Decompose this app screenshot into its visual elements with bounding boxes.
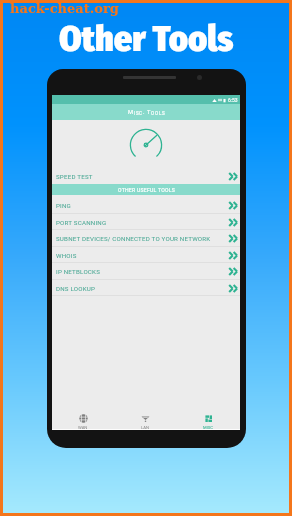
other: Speed gauge <box>129 128 163 162</box>
staticText: WHOIS <box>56 252 77 259</box>
staticText: . <box>143 109 145 116</box>
staticText: S <box>136 111 139 116</box>
staticText: PORT SCANNING <box>56 219 107 226</box>
staticText: M <box>128 109 134 116</box>
staticText: T <box>147 109 151 116</box>
staticText: SUBNET DEVICES/ CONNECTED TO YOUR NETWOR… <box>56 235 211 242</box>
staticText: C <box>139 111 143 116</box>
staticText: OTHER USEFUL TOOLS <box>118 187 175 193</box>
button[interactable]: PING <box>52 197 240 214</box>
other: MISC <box>204 414 213 423</box>
staticText: L <box>159 111 162 116</box>
staticText: SPEED TEST <box>56 173 93 180</box>
staticText: IP NETBLOCKS <box>56 268 101 275</box>
button[interactable]: MISC <box>177 395 240 429</box>
other: LAN <box>141 414 150 423</box>
button[interactable]: WHOIS <box>52 247 240 263</box>
staticText: LAN <box>141 425 150 429</box>
button[interactable]: IP NETBLOCKS <box>52 263 240 280</box>
staticText: 6:53 <box>228 97 238 103</box>
staticText: O <box>151 111 155 116</box>
other: WAN <box>79 414 88 423</box>
staticText: S <box>162 111 165 116</box>
button[interactable]: LAN <box>114 395 177 429</box>
button[interactable]: WAN <box>52 395 114 429</box>
button[interactable]: SPEED TEST <box>52 168 240 184</box>
staticText: hack-cheat.org <box>10 1 119 16</box>
staticText: PING <box>56 202 72 209</box>
staticText: Other Tools <box>59 17 234 60</box>
staticText: MISC <box>203 425 214 429</box>
button[interactable]: PORT SCANNING <box>52 214 240 230</box>
button[interactable]: DNS LOOKUP <box>52 280 240 296</box>
staticText: O <box>155 111 159 116</box>
staticText: WAN <box>78 425 88 429</box>
staticText: I <box>134 111 136 116</box>
button[interactable]: SUBNET DEVICES/ CONNECTED TO YOUR NETWOR… <box>52 230 240 247</box>
staticText: DNS LOOKUP <box>56 285 96 292</box>
